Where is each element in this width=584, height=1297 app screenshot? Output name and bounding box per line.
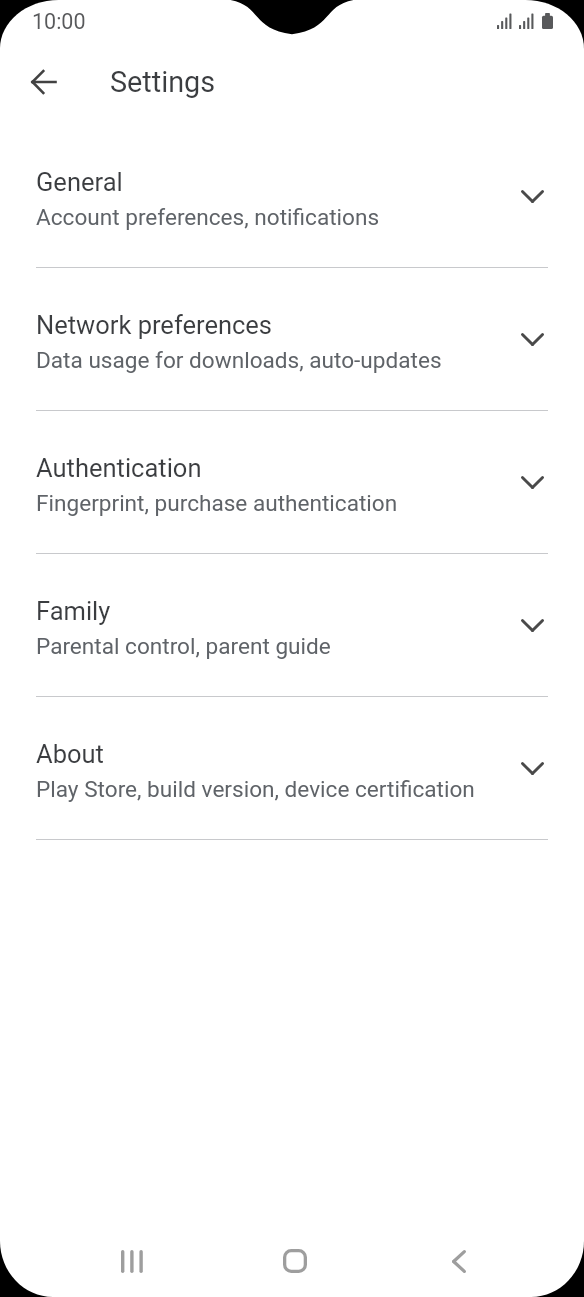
button[interactable]: Home bbox=[248, 1226, 342, 1296]
staticText: Play Store, build version, device certif… bbox=[36, 776, 475, 802]
button[interactable]: Network preferences bbox=[0, 295, 584, 411]
staticText: Data usage for downloads, auto-updates bbox=[36, 347, 442, 373]
staticText: Settings bbox=[110, 65, 216, 99]
staticText: Fingerprint, purchase authentication bbox=[36, 490, 398, 516]
staticText: Family bbox=[36, 596, 111, 626]
button[interactable]: Back bbox=[412, 1226, 506, 1296]
button[interactable]: General bbox=[0, 152, 584, 268]
staticText: Network preferences bbox=[36, 310, 273, 340]
button[interactable]: About bbox=[0, 724, 584, 840]
button[interactable]: Family bbox=[0, 581, 584, 697]
button[interactable]: Recents bbox=[85, 1226, 179, 1296]
button[interactable]: Authentication bbox=[0, 438, 584, 554]
staticText: Account preferences, notifications bbox=[36, 204, 380, 230]
staticText: General bbox=[36, 167, 123, 197]
button[interactable]: Back bbox=[20, 58, 68, 106]
staticText: 10:00 bbox=[32, 9, 86, 34]
staticText: Authentication bbox=[36, 453, 202, 483]
staticText: About bbox=[36, 739, 104, 769]
staticText: Parental control, parent guide bbox=[36, 633, 331, 659]
